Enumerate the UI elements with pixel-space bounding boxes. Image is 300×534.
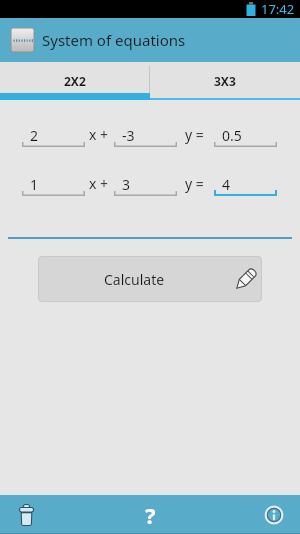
staticText: 2X2 — [64, 73, 86, 89]
button[interactable]: 4 — [214, 166, 277, 196]
staticText: 3 — [122, 175, 131, 194]
button[interactable]: 3 — [114, 166, 177, 196]
staticText: Calculate — [104, 270, 165, 289]
button[interactable]: 2X2 — [0, 62, 150, 100]
staticText: 1 — [30, 175, 39, 194]
staticText: ? — [145, 500, 156, 530]
button[interactable]: 2 — [22, 117, 85, 147]
button[interactable]: Calculate — [38, 256, 262, 302]
staticText: 4 — [222, 175, 231, 194]
staticText: y = — [185, 174, 204, 193]
staticText: -3 — [122, 126, 135, 145]
staticText: 3X3 — [214, 73, 236, 89]
staticText: System of equations — [42, 30, 186, 50]
button[interactable] — [256, 496, 292, 533]
staticText: 17:42 — [261, 0, 295, 18]
staticText: y = — [185, 125, 204, 144]
staticText: x + — [89, 174, 109, 193]
button[interactable]: 0.5 — [214, 117, 277, 147]
staticText: 2 — [30, 126, 39, 145]
button[interactable]: 1 — [22, 166, 85, 196]
button[interactable]: 3X3 — [150, 62, 300, 100]
button[interactable]: -3 — [114, 117, 177, 147]
button[interactable]: ? — [130, 495, 170, 534]
staticText: 0.5 — [222, 126, 242, 145]
staticText: x + — [89, 125, 109, 144]
button[interactable] — [8, 497, 44, 532]
